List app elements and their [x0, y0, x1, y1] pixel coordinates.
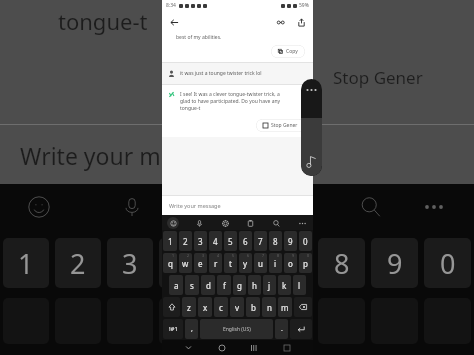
button[interactable]: 2: [179, 231, 192, 251]
button[interactable]: 5: [224, 231, 237, 251]
staticText: u: [258, 258, 263, 269]
button[interactable]: 7: [254, 253, 267, 273]
button[interactable]: l: [293, 275, 306, 295]
staticText: 5: [232, 253, 235, 258]
staticText: 9: [288, 236, 293, 247]
staticText: 9: [292, 253, 295, 258]
staticText: glad to have participated. Do you have a…: [180, 98, 281, 105]
button[interactable]: 4: [209, 231, 222, 251]
button[interactable]: 0: [299, 253, 312, 273]
button[interactable]: Voice input: [193, 217, 205, 229]
button[interactable]: 7: [254, 231, 267, 251]
staticText: 1: [168, 236, 173, 247]
button[interactable]: .: [275, 319, 288, 339]
button[interactable]: Keyboard layout: [280, 341, 293, 354]
button[interactable]: Shift: [163, 297, 180, 317]
button[interactable]: Enter: [290, 319, 312, 339]
button[interactable]: Write your message: [162, 196, 313, 215]
button[interactable]: Back: [167, 15, 181, 29]
button[interactable]: x: [198, 297, 212, 317]
staticText: z: [187, 302, 191, 313]
button[interactable]: j: [263, 275, 276, 295]
button[interactable]: s: [185, 275, 199, 295]
button[interactable]: f: [217, 275, 231, 295]
button[interactable]: More: [301, 79, 322, 176]
staticText: tongue-t: [58, 6, 148, 36]
button[interactable]: Search: [270, 217, 282, 229]
staticText: b: [251, 302, 256, 313]
staticText: o: [288, 258, 293, 269]
staticText: y: [243, 258, 248, 269]
staticText: best of my abilities.: [176, 34, 222, 41]
button[interactable]: z: [182, 297, 196, 317]
button[interactable]: English (US): [200, 319, 273, 339]
button[interactable]: Emoji: [167, 217, 179, 229]
button[interactable]: Home: [215, 341, 228, 354]
staticText: 7: [258, 236, 263, 247]
button[interactable]: h: [248, 275, 261, 295]
button[interactable]: g: [233, 275, 246, 295]
staticText: s: [190, 280, 194, 291]
button[interactable]: b: [246, 297, 260, 317]
button[interactable]: v: [230, 297, 244, 317]
button[interactable]: k: [278, 275, 291, 295]
button[interactable]: Backspace: [294, 297, 312, 317]
staticText: 8:34: [166, 2, 176, 9]
button[interactable]: More options: [296, 217, 308, 229]
staticText: 0: [307, 253, 310, 258]
staticText: w: [182, 258, 189, 269]
staticText: e: [198, 258, 203, 269]
button[interactable]: n: [262, 297, 276, 317]
button[interactable]: 1: [163, 253, 177, 273]
button[interactable]: 0: [299, 231, 312, 251]
button[interactable]: New chat: [273, 15, 287, 29]
button[interactable]: Hide keyboard: [182, 341, 195, 354]
staticText: j: [268, 280, 271, 291]
button[interactable]: 3: [194, 231, 207, 251]
button[interactable]: c: [214, 297, 228, 317]
button[interactable]: 6: [239, 231, 252, 251]
staticText: Write your mes: [20, 140, 185, 171]
staticText: Stop Gener: [333, 66, 423, 89]
staticText: 3: [122, 245, 138, 282]
button[interactable]: 8: [269, 253, 282, 273]
staticText: 1: [172, 253, 175, 258]
button[interactable]: 2: [179, 253, 192, 273]
staticText: d: [206, 280, 211, 291]
button[interactable]: d: [201, 275, 215, 295]
staticText: g: [237, 280, 242, 291]
button[interactable]: 1: [163, 231, 177, 251]
staticText: 4: [213, 236, 218, 247]
button[interactable]: !#1: [163, 319, 183, 339]
staticText: .: [281, 324, 283, 334]
button[interactable]: 3: [194, 253, 207, 273]
button[interactable]: m: [278, 297, 292, 317]
button[interactable]: Settings: [219, 217, 231, 229]
staticText: 1: [18, 245, 34, 282]
staticText: 2: [187, 253, 190, 258]
staticText: n: [267, 302, 272, 313]
button[interactable]: 6: [239, 253, 252, 273]
staticText: t: [229, 258, 232, 269]
staticText: 0: [440, 245, 456, 282]
staticText: v: [235, 302, 240, 313]
staticText: 2: [183, 236, 188, 247]
button[interactable]: it was just a tounge twister trick lol: [162, 63, 313, 84]
staticText: 8: [334, 245, 350, 282]
button[interactable]: Stop Gener: [256, 119, 305, 132]
button[interactable]: a: [169, 275, 183, 295]
button[interactable]: Copy: [271, 45, 305, 58]
button[interactable]: Share: [294, 15, 308, 29]
button[interactable]: 8: [269, 231, 282, 251]
button[interactable]: 5: [224, 253, 237, 273]
staticText: English (US): [223, 326, 251, 333]
staticText: x: [203, 302, 208, 313]
button[interactable]: 4: [209, 253, 222, 273]
button[interactable]: ,: [185, 319, 198, 339]
button[interactable]: Clipboard: [244, 217, 256, 229]
button[interactable]: Recents: [247, 341, 260, 354]
staticText: I see! It was a clever tongue-twister tr…: [180, 91, 280, 98]
button[interactable]: 9: [284, 231, 297, 251]
button[interactable]: 9: [284, 253, 297, 273]
staticText: 3: [202, 253, 205, 258]
